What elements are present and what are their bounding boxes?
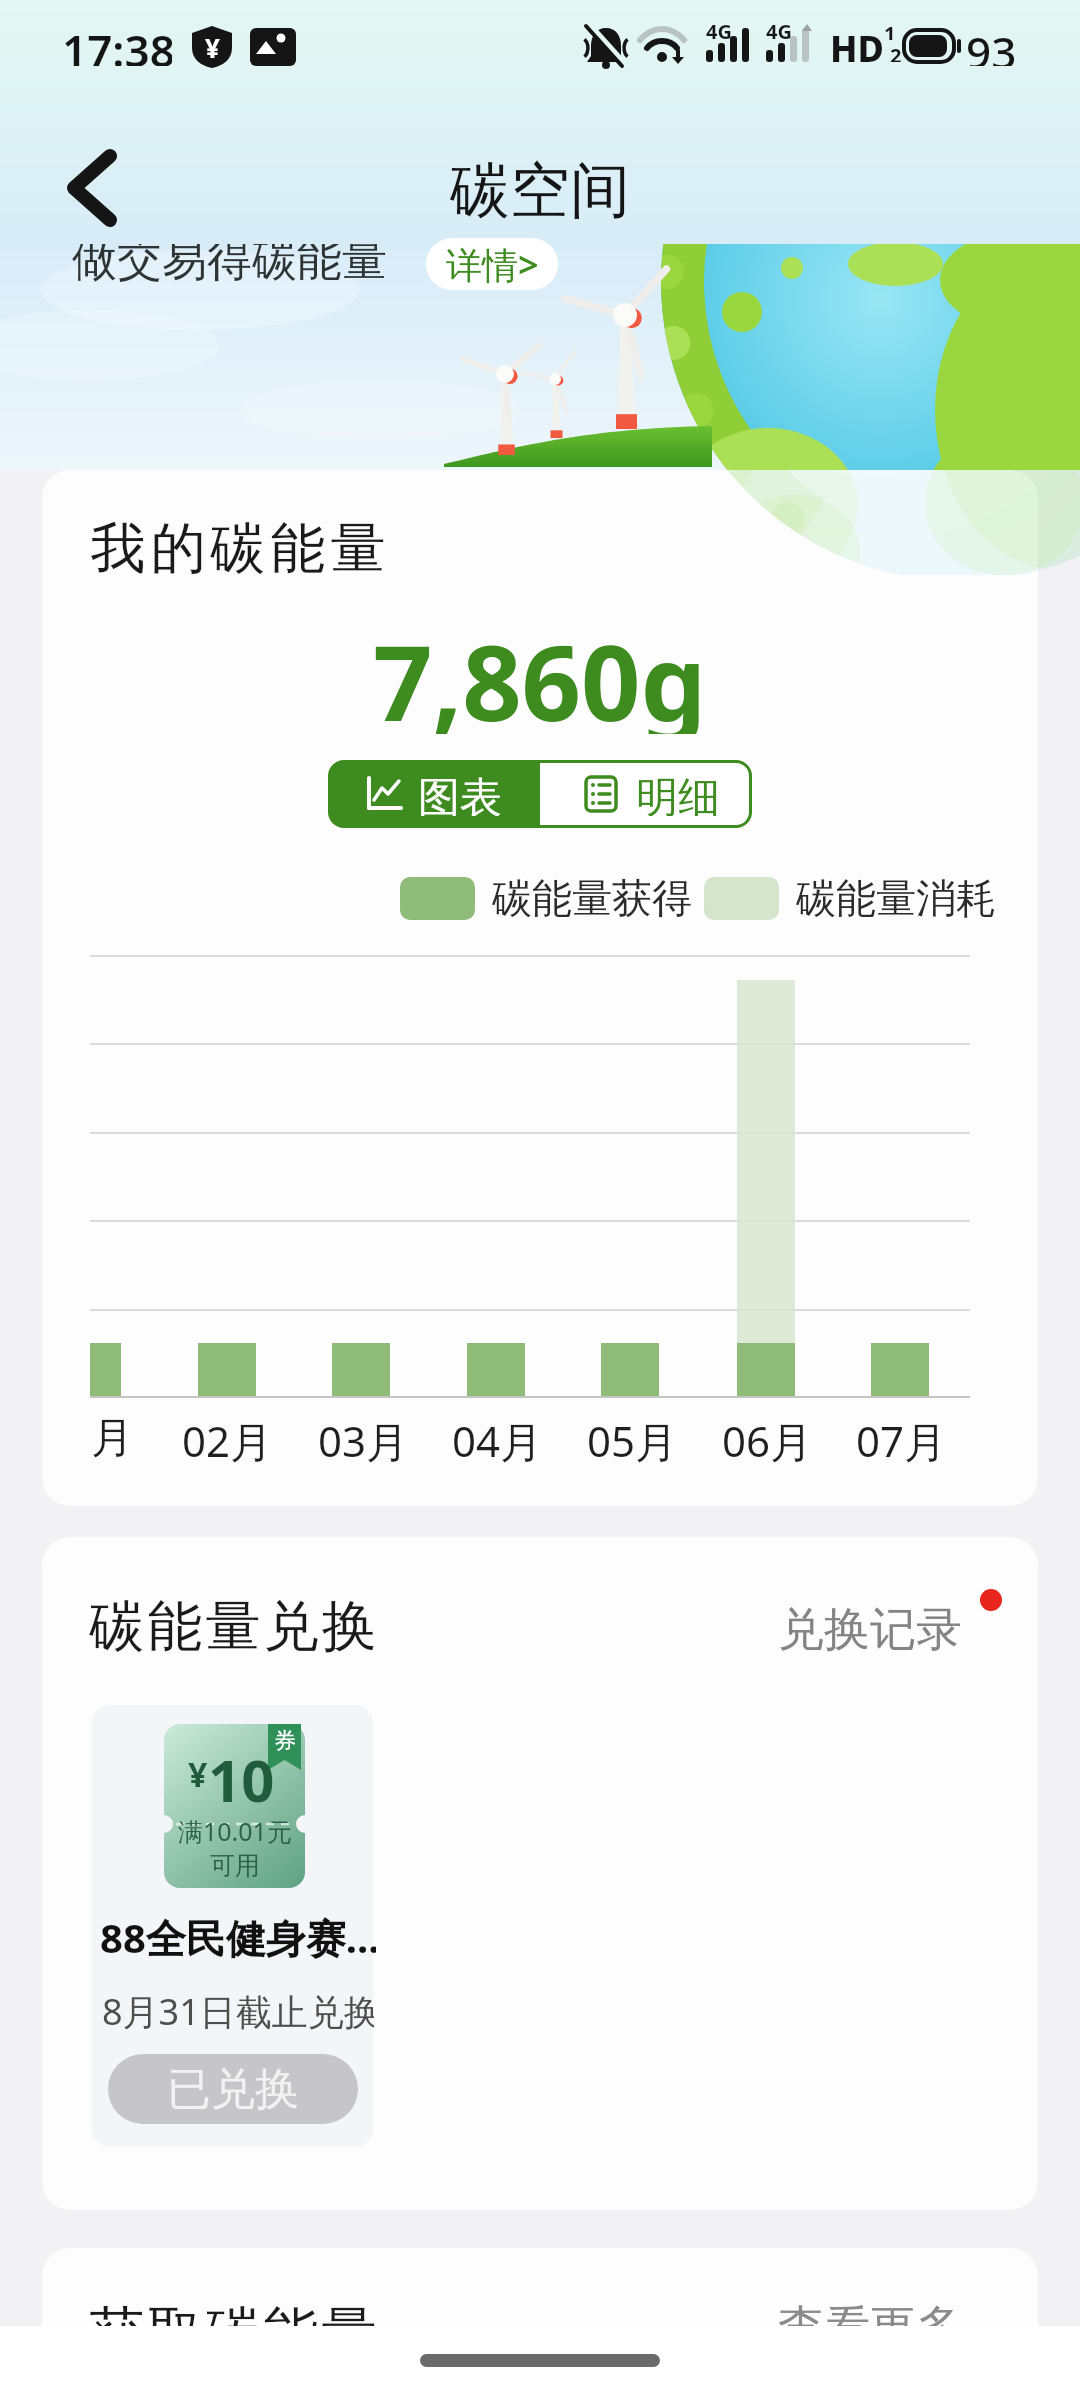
staticText: 1: [884, 20, 896, 40]
staticText: 查看更多: [778, 2299, 962, 2357]
staticText: 06月: [722, 1412, 813, 1464]
button[interactable]: 已兑换: [108, 2054, 358, 2124]
button[interactable]: 兑换记录: [652, 1600, 962, 1660]
staticText: 04月: [452, 1412, 543, 1464]
button[interactable]: 查看更多: [652, 2298, 962, 2358]
staticText: 已兑换: [167, 2062, 299, 2117]
staticText: HD: [830, 24, 884, 66]
staticText: 03月: [318, 1412, 409, 1464]
staticText: 月: [91, 1412, 133, 1464]
staticText: 兑换记录: [778, 1601, 962, 1659]
staticText: 我的碳能量: [88, 514, 388, 583]
staticText: 满10.01元: [178, 1814, 292, 1848]
staticText: 做交易得碳能量: [72, 232, 387, 289]
staticText: 详情>: [446, 240, 539, 289]
staticText: 碳空间: [450, 153, 630, 229]
staticText: 券: [274, 1727, 296, 1755]
staticText: 05月: [587, 1412, 678, 1464]
button[interactable]: [92, 1705, 373, 2147]
button[interactable]: [328, 760, 540, 828]
staticText: ¥: [205, 30, 220, 65]
staticText: 10: [208, 1740, 275, 1808]
staticText: 88全民健身赛...: [100, 1910, 376, 1962]
staticText: 碳能量消耗: [796, 873, 996, 923]
staticText: 17:38: [62, 20, 172, 66]
staticText: 碳能量兑换: [88, 1592, 378, 1661]
staticText: 4G: [706, 18, 732, 40]
staticText: 07月: [856, 1412, 947, 1464]
staticText: 可用: [210, 1850, 260, 1881]
button[interactable]: 详情>: [426, 238, 558, 290]
staticText: 93: [966, 22, 1017, 66]
button[interactable]: [540, 763, 749, 825]
staticText: ¥: [188, 1751, 208, 1797]
staticText: 7,860g: [373, 610, 707, 734]
staticText: 获取碳能量: [88, 2298, 378, 2367]
staticText: 02月: [182, 1412, 273, 1464]
staticText: 碳能量获得: [492, 873, 692, 923]
staticText: 2: [890, 42, 902, 62]
button[interactable]: [66, 150, 118, 226]
staticText: 4G: [766, 18, 792, 40]
staticText: 8月31日截止兑换: [102, 1987, 374, 2036]
staticText: 明细: [636, 772, 720, 816]
staticText: 图表: [418, 772, 502, 816]
